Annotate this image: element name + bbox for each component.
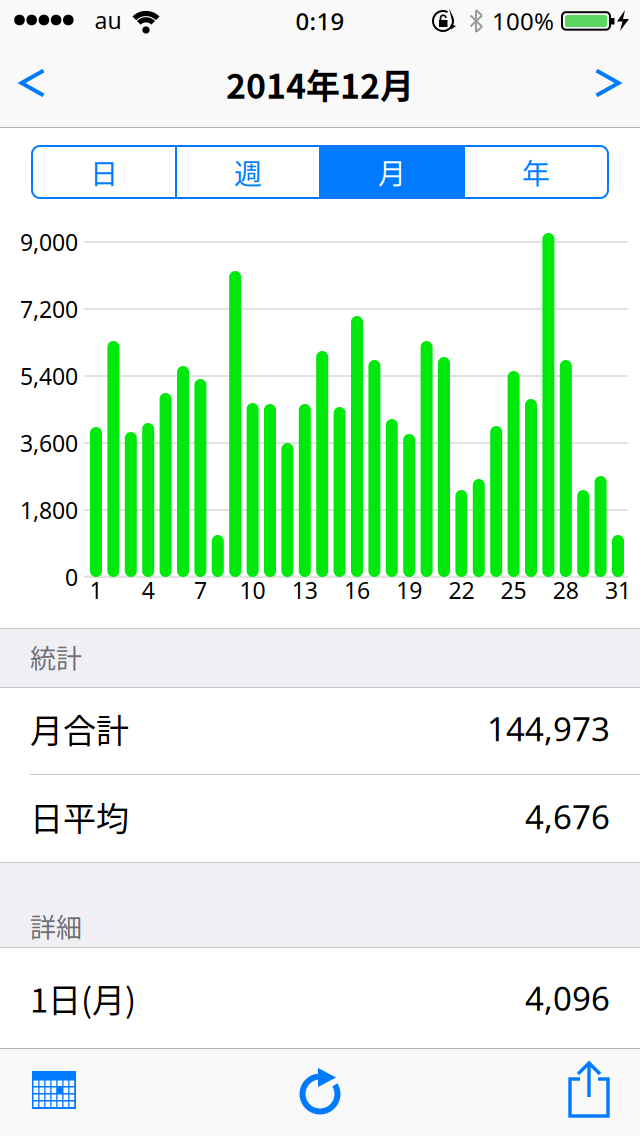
staticText: 13 (292, 574, 318, 606)
staticText: 22 (448, 574, 474, 606)
staticText: 詳細 (30, 907, 82, 945)
button[interactable]: 1日(月) (0, 948, 640, 1048)
staticText: 16 (344, 574, 370, 606)
staticText: 週 (234, 152, 262, 192)
staticText: 100% (492, 5, 554, 37)
staticText: 4 (142, 574, 155, 606)
staticText: 年 (522, 152, 550, 192)
button[interactable] (10, 1048, 98, 1136)
staticText: 3,600 (20, 427, 78, 459)
staticText: 10 (240, 574, 266, 606)
staticText: 7,200 (20, 293, 78, 325)
staticText: 0:19 (295, 5, 344, 37)
button[interactable] (18, 58, 62, 102)
staticText: 1,800 (20, 494, 78, 526)
staticText: 月合計 (30, 705, 129, 752)
button[interactable] (578, 58, 622, 102)
staticText: 25 (501, 574, 527, 606)
staticText: 4,676 (525, 794, 610, 839)
staticText: 31 (605, 574, 631, 606)
button[interactable]: 週 (176, 146, 320, 198)
staticText: 4,096 (525, 975, 610, 1020)
staticText: 28 (553, 574, 579, 606)
button[interactable]: 年 (464, 146, 608, 198)
staticText: 19 (396, 574, 422, 606)
button[interactable] (276, 1048, 364, 1136)
staticText: 2014年12月 (226, 59, 414, 109)
staticText: 1日(月) (30, 974, 136, 1022)
staticText: 9,000 (20, 226, 78, 258)
staticText: 1 (89, 574, 102, 606)
staticText: 日 (90, 152, 118, 192)
staticText: 0 (65, 561, 78, 593)
staticText: 月 (378, 152, 406, 192)
staticText: 144,973 (487, 706, 610, 751)
button[interactable]: 日 (32, 146, 176, 198)
button[interactable]: 月合計 (0, 688, 640, 775)
button[interactable]: 日平均 (0, 775, 640, 862)
staticText: au (94, 4, 121, 36)
staticText: 統計 (30, 638, 82, 676)
staticText: 日平均 (30, 793, 129, 840)
staticText: 7 (194, 574, 207, 606)
button[interactable] (545, 1048, 633, 1136)
staticText: 5,400 (20, 360, 78, 392)
button[interactable]: 月 (320, 146, 464, 198)
